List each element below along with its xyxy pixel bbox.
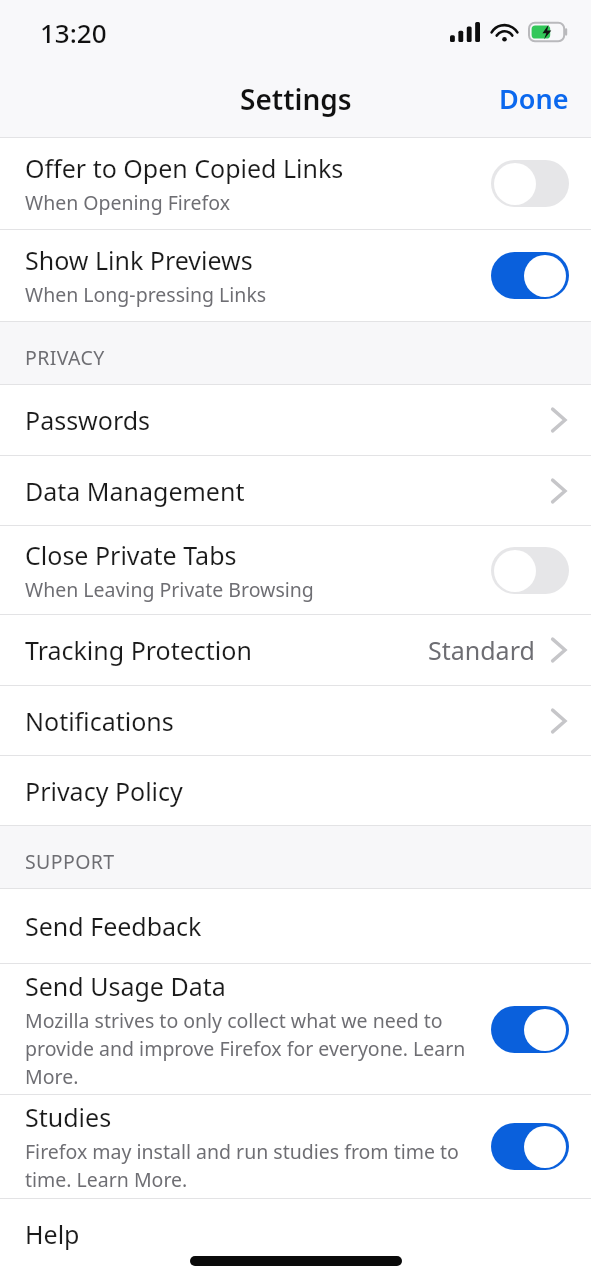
staticText: SUPPORT [25, 848, 115, 875]
button[interactable]: Off [491, 547, 569, 594]
staticText: Send Feedback [25, 909, 202, 943]
button[interactable]: Done [477, 68, 591, 129]
button[interactable]: On [491, 252, 569, 299]
staticText: Help [25, 1217, 80, 1251]
button[interactable]: On [491, 1006, 569, 1053]
button[interactable]: Close Private Tabs [0, 526, 591, 614]
staticText: Studies [25, 1100, 112, 1134]
button[interactable]: Show Link Previews [0, 230, 591, 321]
staticText: Passwords [25, 403, 151, 437]
staticText: Mozilla strives to only collect what we … [25, 1007, 491, 1090]
button[interactable]: Tracking Protection [0, 615, 591, 685]
staticText: Tracking Protection [25, 633, 252, 667]
button[interactable]: Data Management [0, 456, 591, 525]
staticText: When Leaving Private Browsing [25, 576, 314, 603]
staticText: Show Link Previews [25, 243, 253, 277]
staticText: Notifications [25, 704, 174, 738]
button[interactable]: On [491, 1123, 569, 1170]
staticText: When Long-pressing Links [25, 281, 267, 308]
staticText: Send Usage Data [25, 969, 226, 1003]
button[interactable]: Passwords [0, 385, 591, 455]
staticText: Done [499, 80, 569, 117]
button[interactable]: Notifications [0, 686, 591, 755]
staticText: PRIVACY [25, 344, 105, 371]
staticText: Settings [240, 80, 352, 118]
staticText: Offer to Open Copied Links [25, 151, 344, 185]
staticText: Data Management [25, 474, 245, 508]
button[interactable]: Privacy Policy [0, 756, 591, 825]
button[interactable]: Help [0, 1199, 591, 1269]
staticText: 13:20 [40, 15, 107, 50]
button[interactable]: Send Feedback [0, 889, 591, 963]
button[interactable]: Send Usage Data [0, 964, 591, 1094]
staticText: Firefox may install and run studies from… [25, 1138, 491, 1193]
staticText: Close Private Tabs [25, 538, 237, 572]
staticText: Standard [428, 633, 535, 667]
button[interactable]: Offer to Open Copied Links [0, 138, 591, 229]
staticText: Privacy Policy [25, 774, 183, 808]
staticText: When Opening Firefox [25, 189, 230, 216]
button[interactable]: Off [491, 160, 569, 207]
button[interactable]: Studies [0, 1095, 591, 1198]
